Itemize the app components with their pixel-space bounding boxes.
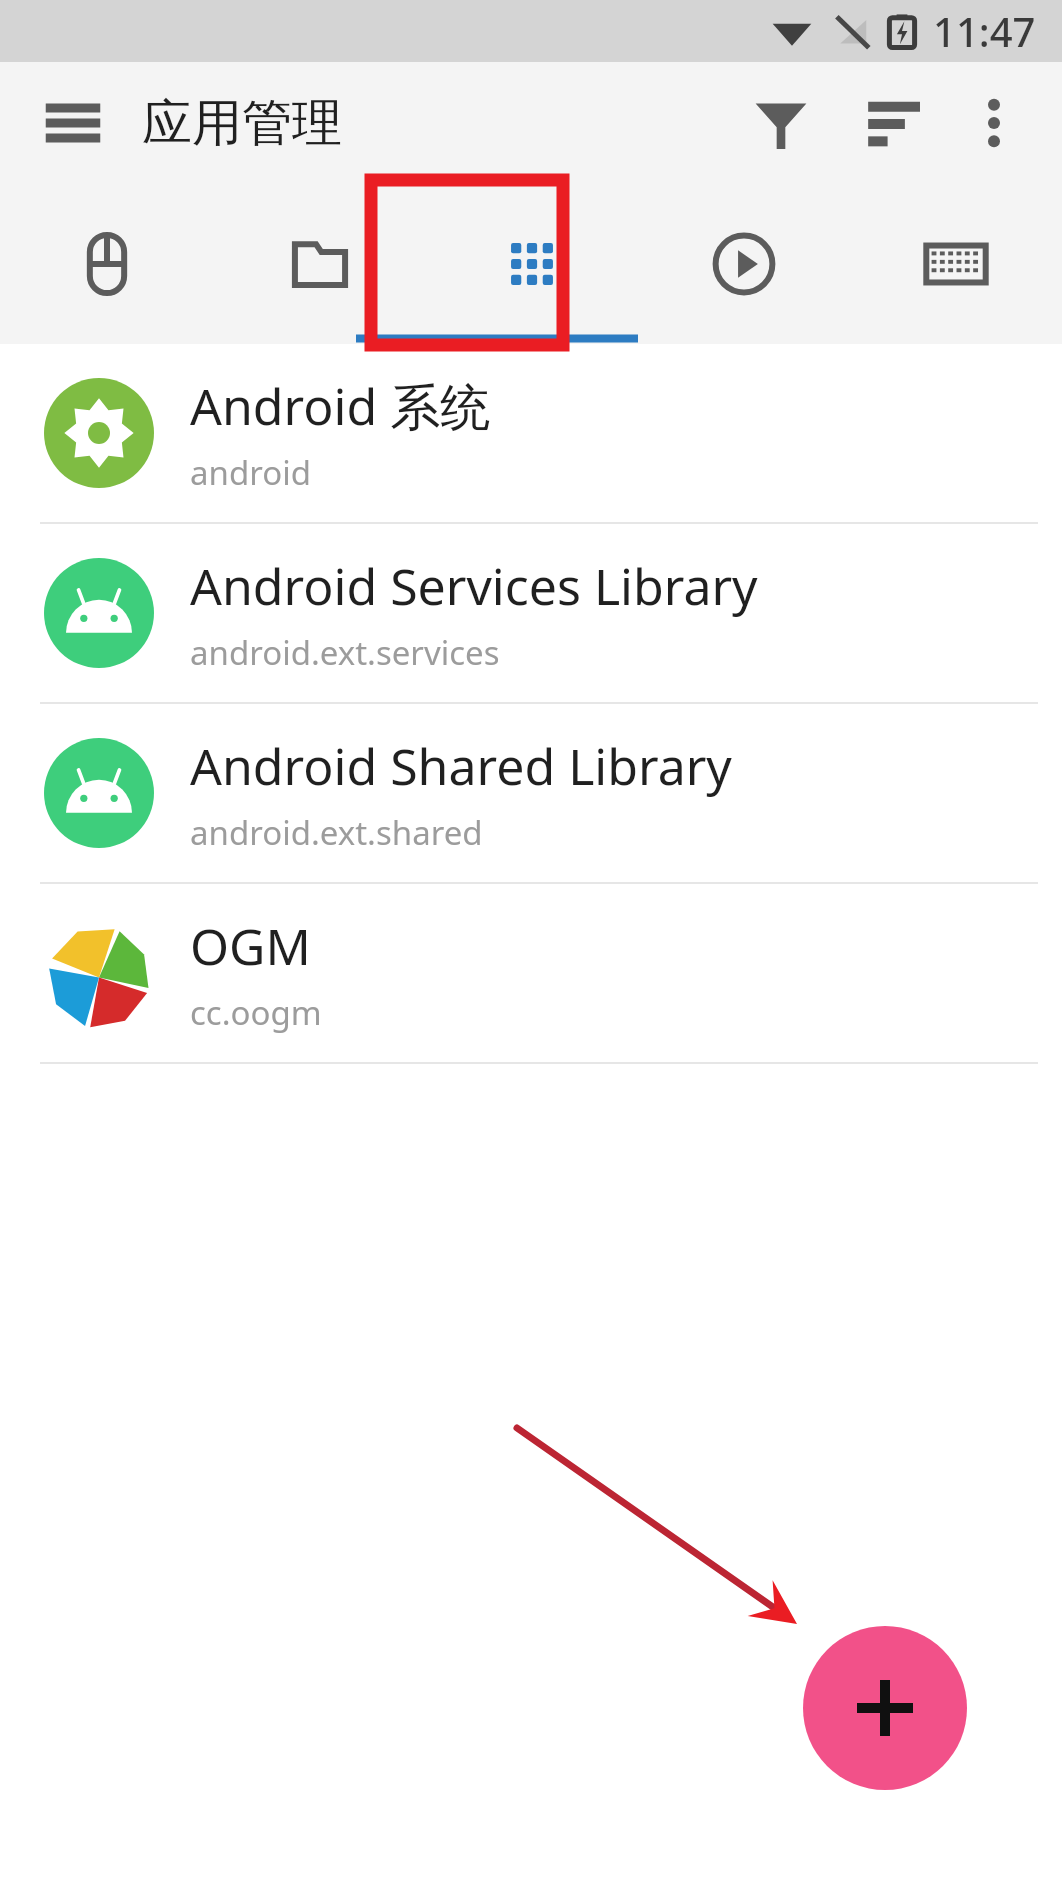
button[interactable]: Devices	[0, 184, 213, 344]
staticText: Android 系统	[190, 372, 491, 440]
staticText: Android Shared Library	[190, 732, 732, 800]
staticText: OGM	[190, 912, 311, 980]
button[interactable]: Android 系统	[0, 344, 1062, 522]
staticText: android	[190, 450, 311, 495]
staticText: 应用管理	[142, 92, 342, 155]
staticText: android.ext.services	[190, 630, 500, 675]
button[interactable]: More options	[950, 79, 1038, 167]
button[interactable]: Media	[638, 184, 850, 344]
staticText: cc.oogm	[190, 990, 322, 1035]
button[interactable]: OGM	[0, 884, 1062, 1062]
staticText: android.ext.shared	[190, 810, 483, 855]
button[interactable]: Add application	[803, 1626, 967, 1790]
button[interactable]: Files	[213, 184, 426, 344]
staticText: 11:47	[933, 4, 1036, 58]
button[interactable]: Navigation menu	[28, 78, 118, 168]
button[interactable]: Filter	[734, 76, 828, 170]
button[interactable]: Sort	[846, 76, 940, 170]
button[interactable]: Keyboard	[850, 184, 1062, 344]
staticText: Android Services Library	[190, 552, 758, 620]
button[interactable]: Applications	[426, 184, 638, 344]
button[interactable]: Android Services Library	[0, 524, 1062, 702]
button[interactable]: Android Shared Library	[0, 704, 1062, 882]
